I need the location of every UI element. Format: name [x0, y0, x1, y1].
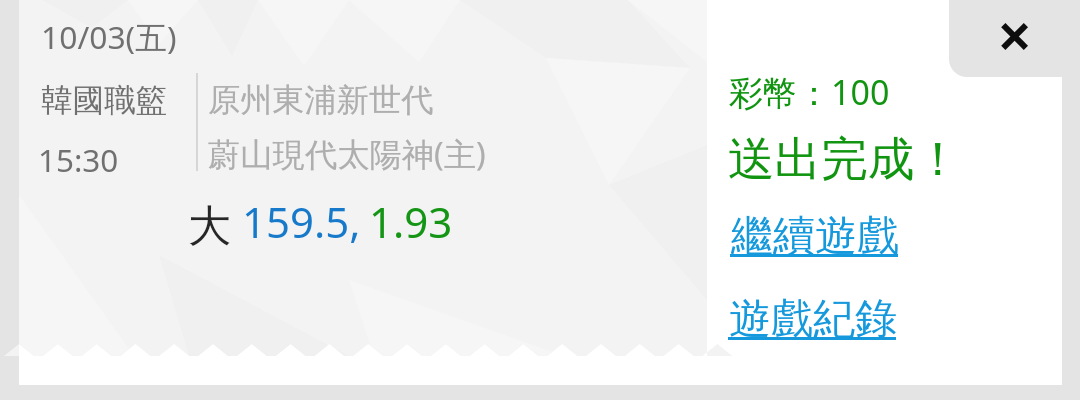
staticText: 1.93: [369, 193, 453, 250]
staticText: 繼續遊戲: [731, 210, 899, 260]
staticText: 遊戲紀錄: [729, 293, 897, 343]
staticText: 彩幣：100: [729, 69, 890, 115]
button[interactable]: 繼續遊戲: [727, 209, 902, 259]
staticText: 原州東浦新世代: [208, 80, 434, 121]
button[interactable]: Close: [949, 0, 1080, 77]
staticText: 送出完成！: [728, 130, 961, 189]
staticText: 大: [188, 199, 232, 253]
button[interactable]: 遊戲紀錄: [727, 293, 902, 343]
staticText: 15:30: [38, 138, 119, 181]
staticText: 159.5,: [242, 193, 361, 250]
staticText: 蔚山現代太陽神(主): [208, 131, 486, 175]
staticText: 韓國職籃: [41, 80, 168, 120]
staticText: 10/03(五): [41, 15, 177, 58]
